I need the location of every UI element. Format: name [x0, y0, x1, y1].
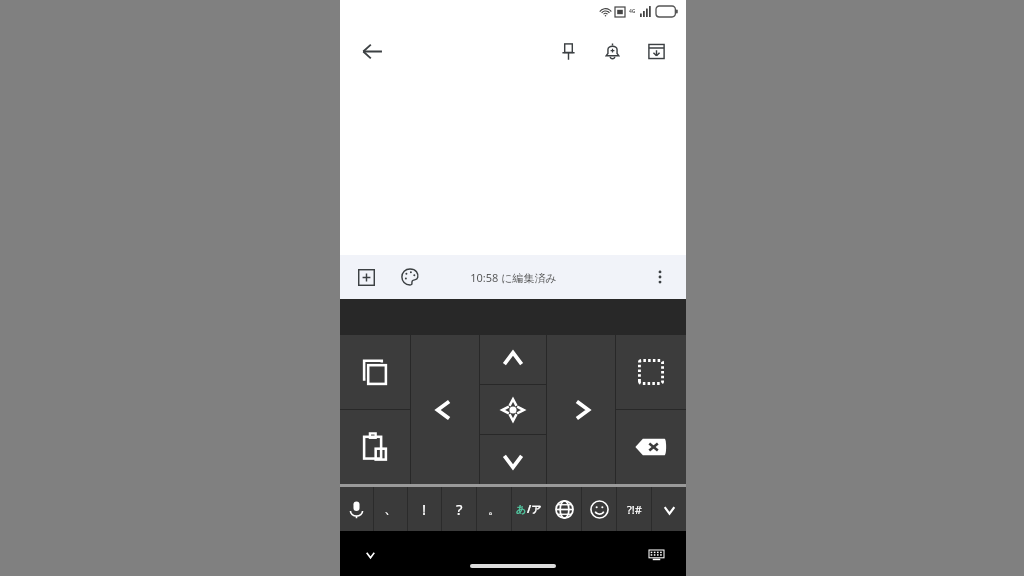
button[interactable]: Hide keyboard: [652, 487, 686, 531]
button[interactable]: Hide keyboard: [354, 538, 386, 570]
staticText: 10:58 に編集済み: [470, 270, 557, 285]
button[interactable]: Archive: [634, 29, 678, 73]
staticText: ?: [456, 499, 463, 519]
button[interactable]: あ: [512, 487, 546, 531]
staticText: あ: [516, 503, 527, 516]
staticText: !: [422, 499, 427, 519]
button[interactable]: More options: [640, 257, 680, 297]
button[interactable]: Emoji: [582, 487, 616, 531]
button[interactable]: Add: [346, 257, 386, 297]
button[interactable]: Copy: [340, 335, 410, 409]
button[interactable]: 。: [477, 487, 511, 531]
button[interactable]: Back: [350, 29, 394, 73]
staticText: /ア: [527, 502, 542, 516]
button[interactable]: Select all: [616, 335, 686, 409]
button[interactable]: ?!#: [617, 487, 651, 531]
button[interactable]: Move right: [547, 335, 615, 484]
button[interactable]: Change language: [547, 487, 581, 531]
button[interactable]: 、: [374, 487, 407, 531]
button[interactable]: !: [408, 487, 441, 531]
staticText: 4G: [629, 8, 636, 15]
button[interactable]: Paste: [340, 410, 410, 484]
staticText: ?!#: [627, 502, 642, 517]
button[interactable]: ?: [442, 487, 476, 531]
button[interactable]: Backspace: [616, 410, 686, 484]
button[interactable]: Move left: [411, 335, 479, 484]
button[interactable]: Color palette: [390, 257, 430, 297]
button[interactable]: Move down: [480, 435, 546, 484]
button[interactable]: Add reminder: [590, 29, 634, 73]
button[interactable]: Move cursor: [480, 385, 546, 434]
staticText: 。: [488, 502, 500, 517]
button[interactable]: Pin: [546, 29, 590, 73]
button[interactable]: Voice input: [340, 487, 373, 531]
staticText: 、: [384, 500, 398, 518]
button[interactable]: Switch keyboard: [640, 538, 672, 570]
button[interactable]: Move up: [480, 335, 546, 384]
